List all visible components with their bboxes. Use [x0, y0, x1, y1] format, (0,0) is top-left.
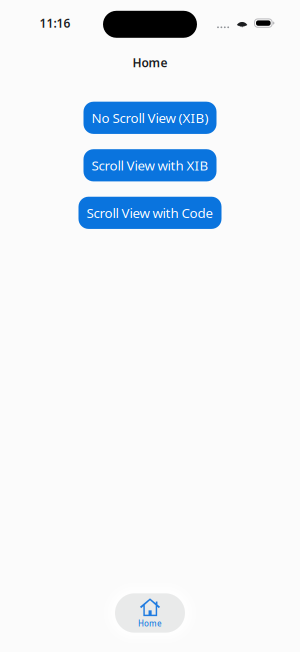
staticText: Home [138, 618, 162, 629]
staticText: 11:16 [39, 15, 70, 31]
button[interactable]: Scroll View with Code [78, 197, 221, 229]
button[interactable]: No Scroll View (XIB) [83, 102, 216, 134]
staticText: Scroll View with XIB [91, 156, 208, 174]
staticText: Home [132, 54, 167, 70]
staticText: No Scroll View (XIB) [91, 109, 208, 127]
button[interactable]: Home [104, 583, 196, 643]
button[interactable]: Scroll View with XIB [83, 149, 216, 181]
staticText: Scroll View with Code [86, 204, 213, 222]
